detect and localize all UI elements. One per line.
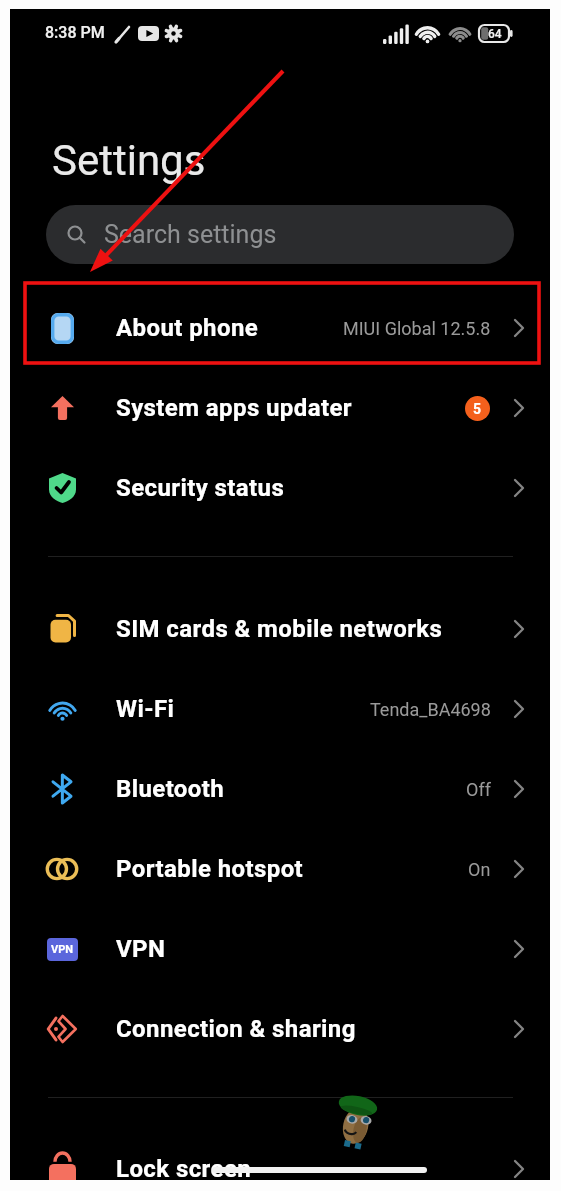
staticText: MIUI Global 12.5.8 xyxy=(343,318,491,339)
staticText: Security status xyxy=(116,474,285,502)
button[interactable]: Wi-Fi xyxy=(10,669,550,749)
staticText: SIM cards & mobile networks xyxy=(116,615,443,643)
button[interactable]: Lock screen xyxy=(10,1129,550,1191)
button[interactable]: Search settings xyxy=(46,205,514,264)
button[interactable]: VPN xyxy=(10,909,550,989)
staticText: Connection & sharing xyxy=(116,1015,356,1043)
staticText: System apps updater xyxy=(116,394,353,422)
button[interactable]: SIM cards & mobile networks xyxy=(10,589,550,669)
staticText: Settings xyxy=(52,136,206,185)
staticText: 8:38 PM xyxy=(45,23,105,42)
button[interactable]: System apps updater xyxy=(10,368,550,448)
staticText: 5 xyxy=(473,401,482,417)
staticText: Wi-Fi xyxy=(116,695,175,723)
button[interactable]: About phone xyxy=(10,288,550,368)
staticText: Off xyxy=(466,779,491,800)
button[interactable]: Connection & sharing xyxy=(10,989,550,1069)
staticText: Search settings xyxy=(104,220,277,249)
staticText: VPN xyxy=(51,943,74,956)
staticText: VPN xyxy=(116,935,166,963)
button[interactable]: Security status xyxy=(10,448,550,528)
staticText: On xyxy=(468,859,491,880)
staticText: Tenda_BA4698 xyxy=(370,699,491,720)
staticText: Lock screen xyxy=(116,1155,252,1183)
button[interactable]: Bluetooth xyxy=(10,749,550,829)
staticText: 64 xyxy=(488,27,502,41)
staticText: About phone xyxy=(116,314,259,342)
button[interactable]: Portable hotspot xyxy=(10,829,550,909)
staticText: Bluetooth xyxy=(116,775,225,803)
staticText: Portable hotspot xyxy=(116,855,304,883)
